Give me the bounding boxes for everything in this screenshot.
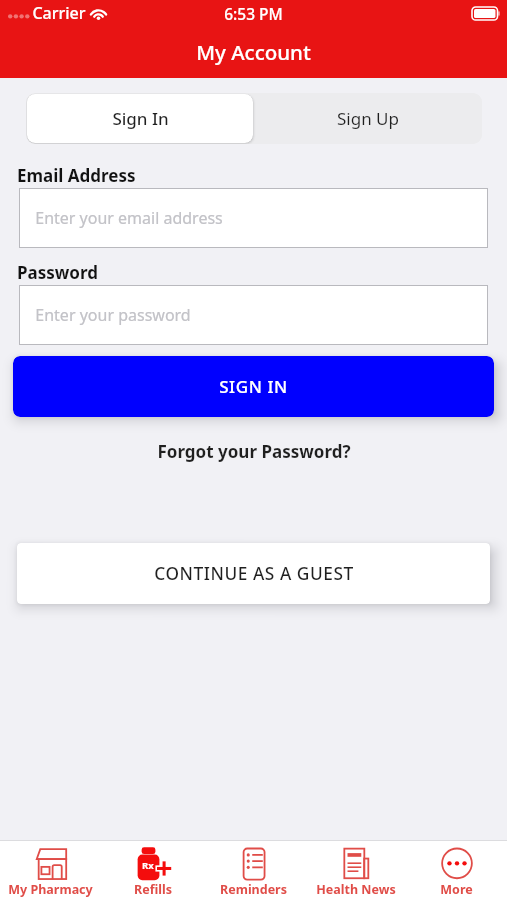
button[interactable]: Enter your email address [35, 188, 488, 248]
staticText: Reminders [220, 881, 287, 898]
staticText: 6:53 PM [224, 3, 283, 24]
button[interactable]: My Pharmacy [0, 841, 101, 900]
button[interactable]: Enter your password [35, 285, 488, 345]
staticText: Password [17, 261, 98, 284]
staticText: My Account [196, 38, 311, 66]
button[interactable]: Refills [102, 841, 203, 900]
staticText: CONTINUE AS A GUEST [154, 562, 354, 586]
button[interactable]: Sign In [27, 94, 253, 143]
other: Reminders [238, 848, 270, 880]
staticText: Sign In [112, 107, 169, 130]
staticText: Sign Up [337, 107, 399, 130]
other: Health News [340, 848, 372, 880]
other: My Pharmacy [35, 848, 67, 880]
button[interactable]: More [406, 841, 507, 900]
staticText: Health News [316, 881, 396, 898]
staticText: SIGN IN [219, 375, 288, 398]
other: Battery [472, 7, 500, 20]
staticText: Forgot your Password? [157, 440, 351, 463]
button[interactable]: CONTINUE AS A GUEST [17, 543, 490, 604]
button[interactable]: Forgot your Password? [0, 433, 507, 469]
staticText: Rx [142, 859, 154, 872]
staticText: My Pharmacy [8, 881, 93, 898]
button[interactable]: Reminders [203, 841, 304, 900]
other: Wi-Fi [89, 7, 108, 20]
staticText: Email Address [17, 164, 136, 187]
staticText: Refills [134, 881, 172, 898]
button[interactable]: Sign Up [254, 93, 482, 144]
button[interactable]: SIGN IN [13, 356, 494, 417]
button[interactable]: Health News [305, 841, 406, 900]
other: More [441, 848, 473, 880]
staticText: Enter your password [35, 304, 191, 326]
other: Refills [137, 848, 169, 880]
staticText: Enter your email address [35, 207, 223, 229]
staticText: More [440, 881, 473, 898]
staticText: Carrier [32, 2, 86, 24]
